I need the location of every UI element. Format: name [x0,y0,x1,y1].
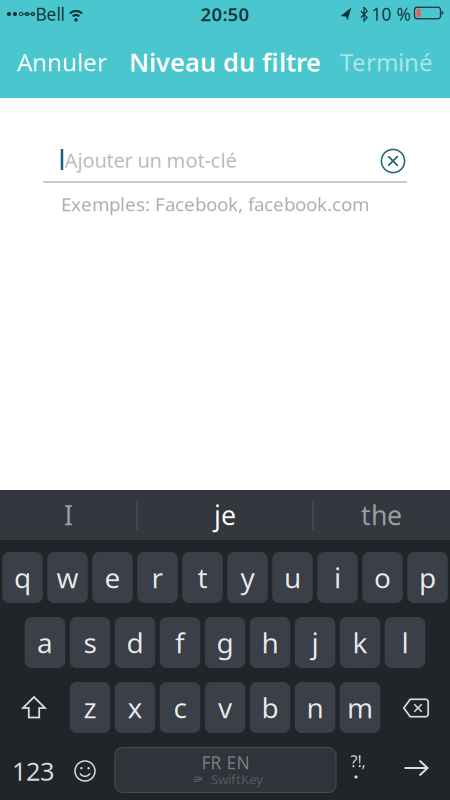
button[interactable]: c [160,682,200,733]
staticText: m [347,689,373,726]
button[interactable]: Supprimer [403,698,429,717]
button[interactable]: Terminé [323,40,450,84]
staticText: j [311,624,318,661]
button[interactable]: I [0,490,137,540]
staticText: FR EN [201,751,249,774]
button[interactable]: Majuscule [22,695,46,720]
button[interactable]: Retour [404,760,428,776]
button[interactable]: Annuler [0,40,127,84]
staticText: q [14,559,31,596]
button[interactable]: i [317,552,358,603]
staticText: 10 % [371,2,410,25]
staticText: z [83,689,96,726]
staticText: g [216,624,233,661]
button[interactable]: s [70,617,110,668]
staticText: I [64,497,73,533]
button[interactable]: y [227,552,268,603]
button[interactable]: x [115,682,155,733]
button[interactable]: f [160,617,200,668]
staticText: r [151,559,163,596]
button[interactable]: Émojis [74,760,96,782]
staticText: c [173,689,186,726]
staticText: v [218,689,232,726]
button[interactable]: Espace [115,747,336,792]
button[interactable]: p [407,552,448,603]
staticText: Ajouter un mot-clé [64,147,236,173]
staticText: Annuler [17,46,107,78]
staticText: a [37,624,53,661]
staticText: d [126,624,143,661]
button[interactable]: je [137,490,313,540]
staticText: Exemples: Facebook, facebook.com [61,192,369,216]
staticText: w [56,559,78,596]
button[interactable]: w [47,552,88,603]
staticText: b [261,689,278,726]
staticText: the [361,497,402,533]
button[interactable]: 123 [5,745,61,796]
button[interactable]: ?!, [344,753,372,783]
button[interactable]: n [295,682,335,733]
staticText: 20:50 [200,2,249,26]
button[interactable]: u [272,552,313,603]
button[interactable]: g [205,617,245,668]
staticText: o [374,559,391,596]
button[interactable]: the [313,490,450,540]
staticText: je [214,497,236,533]
staticText: f [175,624,185,661]
staticText: Bell [35,2,64,25]
button[interactable]: m [340,682,380,733]
staticText: ?!, [350,750,365,772]
staticText: Niveau du filtre [129,45,321,79]
button[interactable]: q [2,552,43,603]
staticText: 123 [12,754,54,788]
button[interactable]: k [340,617,380,668]
staticText: k [352,624,367,661]
button[interactable]: h [250,617,290,668]
staticText: i [334,559,341,596]
button[interactable]: e [92,552,133,603]
staticText: t [197,559,207,596]
button[interactable]: l [385,617,425,668]
staticText: Terminé [340,46,433,78]
staticText: e [104,559,120,596]
staticText: x [127,689,142,726]
button[interactable]: r [137,552,178,603]
staticText: s [83,624,96,661]
button[interactable]: t [182,552,223,603]
button[interactable]: j [295,617,335,668]
button[interactable]: o [362,552,403,603]
button[interactable]: z [70,682,110,733]
staticText: SwiftKey [211,770,263,788]
button[interactable]: a [25,617,65,668]
staticText: h [261,624,278,661]
staticText: n [306,689,323,726]
staticText: l [401,624,408,661]
staticText: p [419,559,436,596]
button[interactable]: b [250,682,290,733]
staticText: u [284,559,301,596]
button[interactable]: Effacer le texte [380,148,406,174]
staticText: y [240,559,254,596]
button[interactable]: v [205,682,245,733]
button[interactable]: d [115,617,155,668]
